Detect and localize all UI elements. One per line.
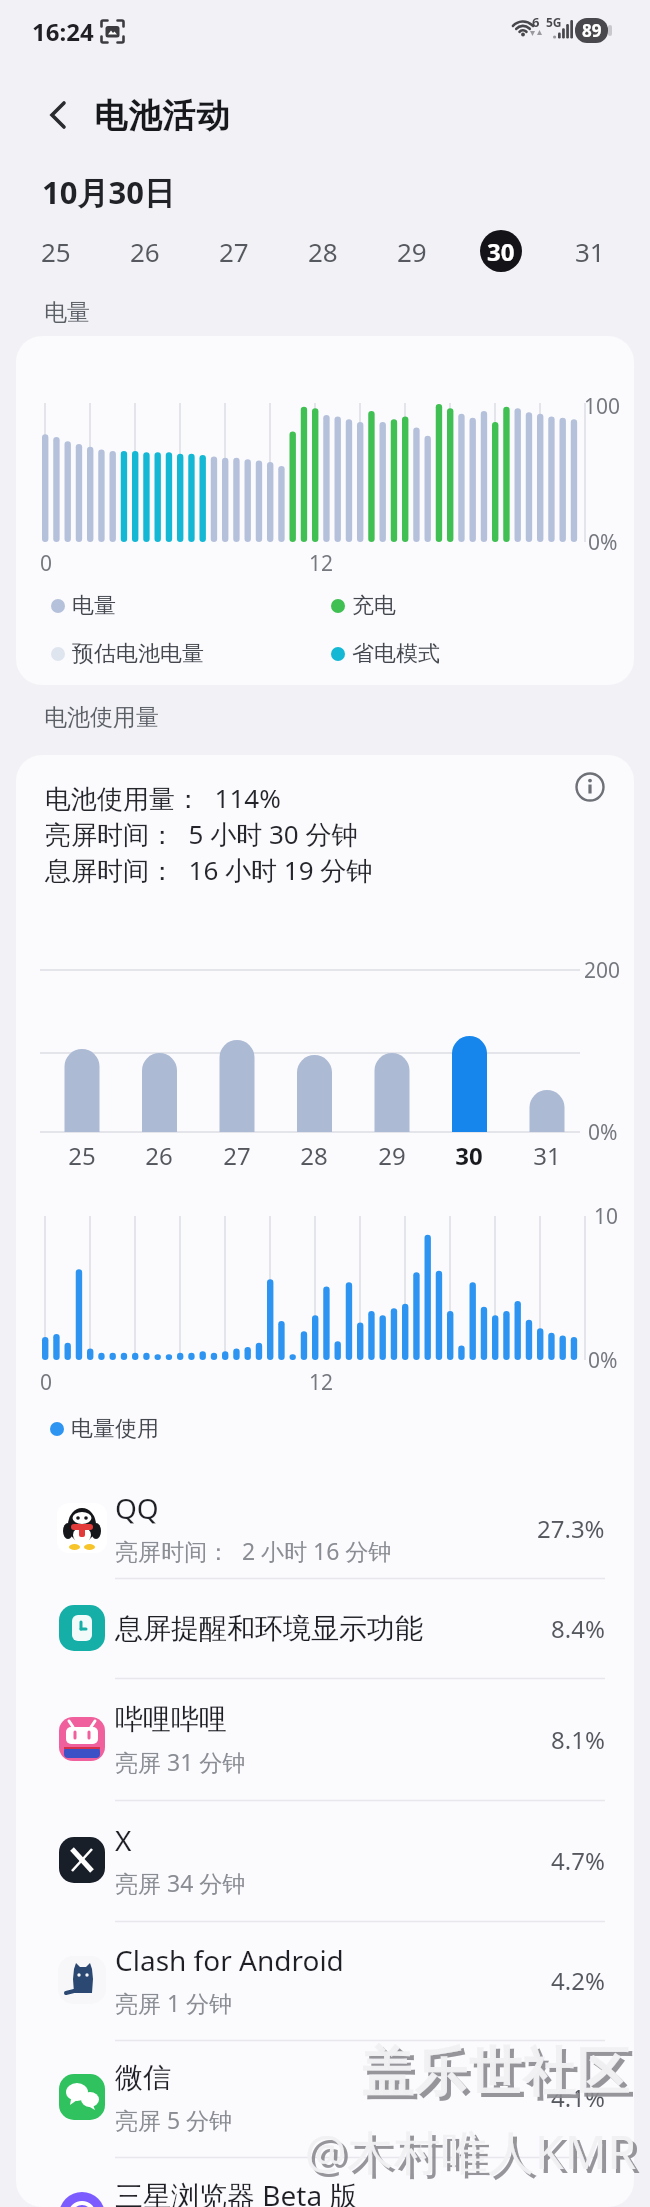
staticText: 27.3% [537, 1512, 605, 1545]
staticText: 26 [145, 1139, 173, 1172]
staticText: 息屏提醒和环境显示功能 [115, 1611, 423, 1646]
staticText: 盖乐世社区 [360, 2040, 630, 2102]
staticText: 27 [223, 1139, 251, 1172]
staticText: 电量 [44, 298, 90, 327]
button[interactable]: 27 [213, 230, 255, 272]
button[interactable]: 30 [480, 230, 522, 272]
staticText: 29 [378, 1139, 406, 1172]
staticText: 28 [300, 1139, 328, 1172]
staticText: 4.1% [551, 2081, 605, 2114]
button[interactable] [16, 1922, 634, 2038]
staticText: 16:24 [32, 15, 94, 48]
button[interactable] [16, 2039, 634, 2155]
staticText: 充电 [352, 592, 396, 620]
staticText: 息屏时间： 16 小时 19 分钟 [45, 852, 373, 888]
staticText: 电池活动 [94, 95, 231, 137]
staticText: 电量使用 [71, 1415, 159, 1443]
staticText: 哔哩哔哩 [115, 1702, 227, 1737]
staticText: 电池使用量： 114% [45, 780, 281, 816]
staticText: 27 [219, 234, 249, 269]
button[interactable]: 25 [35, 230, 77, 272]
staticText: X [115, 1821, 132, 1859]
button[interactable]: 26 [124, 230, 166, 272]
staticText: 4.7% [551, 1844, 605, 1877]
staticText: 100 [584, 392, 621, 421]
button[interactable] [16, 2157, 634, 2207]
staticText: 预估电池电量 [72, 640, 204, 668]
staticText: 亮屏 1 分钟 [115, 1987, 233, 2018]
staticText: 亮屏 5 分钟 [115, 2104, 233, 2135]
staticText: 0% [588, 1118, 618, 1147]
staticText: 0% [588, 1346, 618, 1375]
button[interactable] [16, 1570, 634, 1686]
staticText: 25 [41, 234, 71, 269]
button[interactable]: 31 [569, 230, 611, 272]
staticText: @木村唯人KMR [305, 2120, 638, 2178]
staticText: 亮屏 31 分钟 [115, 1746, 246, 1777]
staticText: 8.1% [551, 1723, 605, 1756]
staticText: 29 [397, 234, 427, 269]
staticText: 亮屏时间： 5 小时 30 分钟 [45, 816, 358, 852]
staticText: 4.2% [551, 1964, 605, 1997]
staticText: 省电模式 [352, 640, 440, 668]
button[interactable]: 28 [302, 230, 344, 272]
staticText: 30 [455, 1139, 483, 1172]
staticText: 电量 [72, 592, 116, 620]
staticText: 12 [309, 549, 334, 578]
staticText: 0% [588, 528, 618, 557]
staticText: 89 [582, 19, 602, 42]
button[interactable] [30, 90, 86, 142]
staticText: 亮屏 34 分钟 [115, 1867, 246, 1898]
staticText: 亮屏时间： 2 小时 16 分钟 [115, 1535, 392, 1566]
staticText: 0 [40, 549, 53, 578]
staticText: 28 [308, 234, 338, 269]
staticText: 200 [584, 956, 621, 985]
staticText: 12 [309, 1368, 334, 1397]
staticText: 电池使用量 [44, 703, 159, 732]
staticText: 31 [575, 234, 605, 269]
staticText: 5G [546, 14, 562, 30]
button[interactable] [16, 1681, 634, 1797]
staticText: 盖乐世社区 [364, 2044, 634, 2106]
staticText: 6 [532, 13, 540, 31]
staticText: 三星浏览器 Beta 版 [115, 2176, 358, 2207]
staticText: 10月30日 [42, 171, 175, 213]
button[interactable] [561, 758, 619, 816]
staticText: @木村唯人KMR [309, 2124, 642, 2182]
staticText: 25 [68, 1139, 96, 1172]
staticText: Clash for Android [115, 1941, 344, 1979]
staticText: 31 [533, 1139, 561, 1172]
staticText: 8.4% [551, 1612, 605, 1645]
staticText: 0 [40, 1368, 53, 1397]
staticText: 30 [487, 235, 515, 268]
staticText: QQ [115, 1489, 159, 1527]
button[interactable] [16, 1470, 634, 1586]
button[interactable] [16, 1802, 634, 1918]
staticText: 10 [594, 1202, 619, 1231]
button[interactable]: 29 [391, 230, 433, 272]
staticText: 微信 [115, 2060, 171, 2095]
staticText: 26 [130, 234, 160, 269]
